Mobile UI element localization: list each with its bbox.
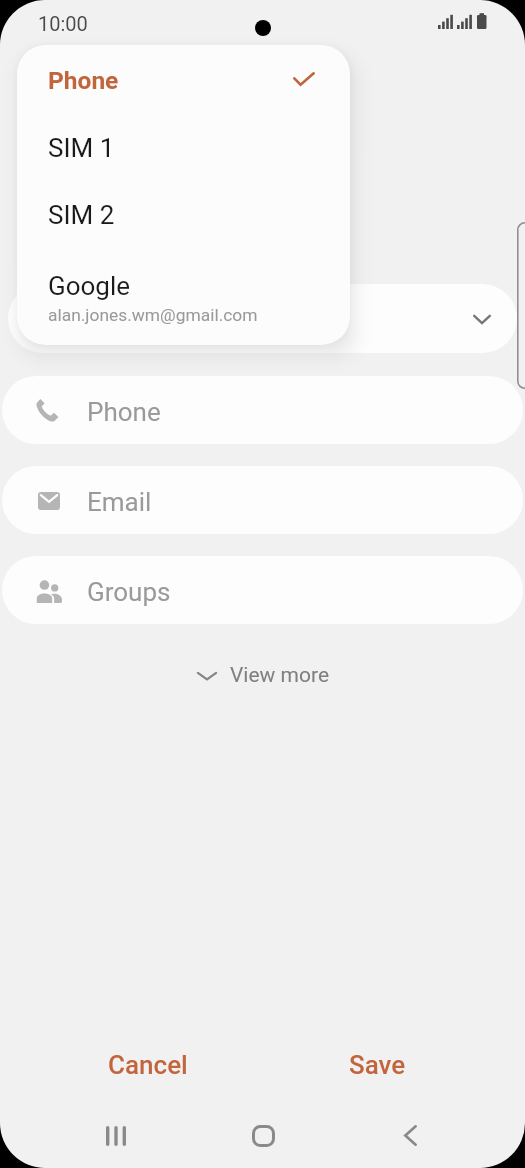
staticText: Email bbox=[87, 487, 152, 517]
staticText: Google bbox=[48, 271, 131, 301]
staticText: Phone bbox=[48, 66, 119, 95]
button[interactable]: Phone bbox=[17, 46, 350, 114]
staticText: View more bbox=[230, 663, 330, 688]
staticText: Phone bbox=[87, 397, 161, 427]
button[interactable]: View more bbox=[0, 655, 525, 695]
button[interactable]: SIM 1 bbox=[17, 114, 350, 182]
staticText: Groups bbox=[87, 577, 171, 607]
button[interactable]: SIM 2 bbox=[17, 181, 350, 249]
button[interactable]: Recent apps bbox=[62, 1107, 170, 1165]
button[interactable]: Google bbox=[17, 249, 350, 339]
staticText: 10:00 bbox=[38, 12, 88, 35]
button[interactable] bbox=[8, 284, 517, 353]
button[interactable]: Back bbox=[356, 1106, 464, 1164]
button[interactable]: Cancel bbox=[32, 1035, 263, 1095]
staticText: SIM 1 bbox=[48, 133, 115, 163]
button[interactable]: Email bbox=[2, 466, 523, 534]
button[interactable]: Home bbox=[209, 1107, 317, 1165]
staticText: Save bbox=[349, 1050, 406, 1080]
staticText: alan.jones.wm@gmail.com bbox=[48, 305, 258, 325]
staticText: SIM 2 bbox=[48, 200, 115, 230]
button[interactable]: Save bbox=[262, 1035, 493, 1095]
button[interactable]: Groups bbox=[2, 556, 523, 624]
button[interactable]: Phone bbox=[2, 376, 523, 444]
staticText: Cancel bbox=[108, 1050, 188, 1080]
